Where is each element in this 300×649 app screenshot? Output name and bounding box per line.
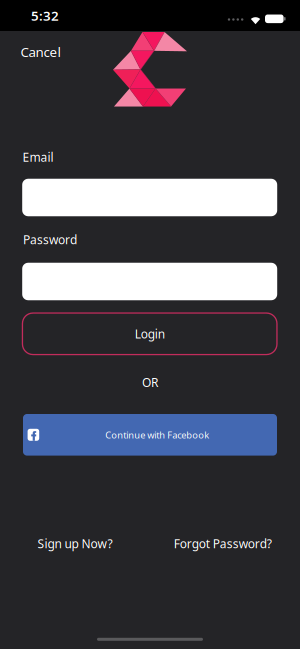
staticText: Login [135,326,165,342]
staticText: Sign up Now? [37,535,112,551]
staticText: 5:32 [31,7,59,24]
button[interactable]: Forgot Password? [174,535,272,551]
staticText: Email [22,149,53,165]
button[interactable]: Sign up Now? [37,535,112,551]
staticText: OR [142,374,158,390]
button[interactable]: Continue with Facebook [23,414,277,456]
staticText: Continue with Facebook [105,429,209,441]
staticText: Cancel [20,43,60,61]
button[interactable]: Login [22,313,277,355]
button[interactable]: Cancel [20,43,60,61]
staticText: Password [23,231,77,247]
staticText: Forgot Password? [174,535,272,551]
